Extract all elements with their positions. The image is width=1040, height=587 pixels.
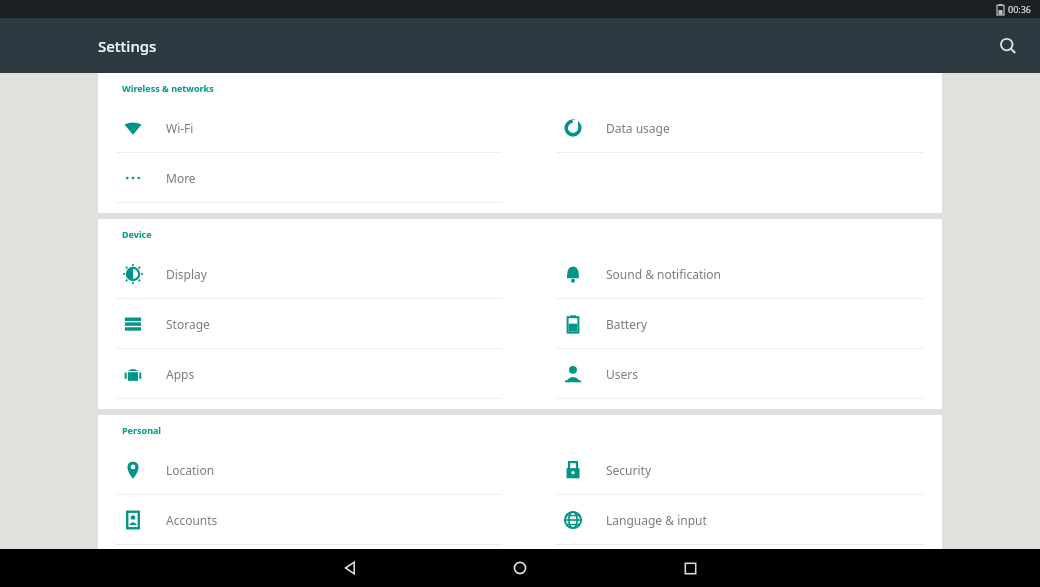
button[interactable]: Apps [98, 349, 520, 398]
button[interactable]: Sound & notification [538, 249, 942, 298]
staticText: Wi-Fi [166, 120, 194, 136]
button[interactable]: Back [330, 549, 370, 587]
staticText: 00:36 [1008, 3, 1032, 15]
button[interactable]: More [98, 153, 520, 202]
staticText: Device [122, 228, 152, 240]
button[interactable]: Accounts [98, 495, 520, 544]
button[interactable]: Home [500, 549, 540, 587]
staticText: Wireless & networks [122, 82, 214, 94]
staticText: More [166, 170, 196, 186]
button[interactable]: Storage [98, 299, 520, 348]
staticText: Apps [166, 366, 195, 382]
button[interactable]: Users [538, 349, 942, 398]
staticText: Location [166, 462, 215, 478]
staticText: Sound & notification [606, 266, 722, 282]
staticText: Security [606, 462, 652, 478]
button[interactable]: Battery [538, 299, 942, 348]
staticText: Users [606, 366, 638, 382]
button[interactable]: Language & input [538, 495, 942, 544]
staticText: Accounts [166, 512, 218, 528]
button[interactable]: Location [98, 445, 520, 494]
button[interactable]: Search [986, 24, 1030, 68]
button[interactable]: Wi-Fi [98, 103, 520, 152]
button[interactable]: Display [98, 249, 520, 298]
staticText: Language & input [606, 512, 707, 528]
button[interactable]: Data usage [538, 103, 942, 152]
staticText: Personal [122, 424, 162, 436]
staticText: Battery [606, 316, 648, 332]
staticText: Storage [166, 316, 210, 332]
button[interactable]: Security [538, 445, 942, 494]
staticText: Display [166, 266, 207, 282]
button[interactable]: Recent apps [670, 549, 710, 587]
staticText: Data usage [606, 120, 670, 136]
staticText: Settings [98, 36, 157, 56]
